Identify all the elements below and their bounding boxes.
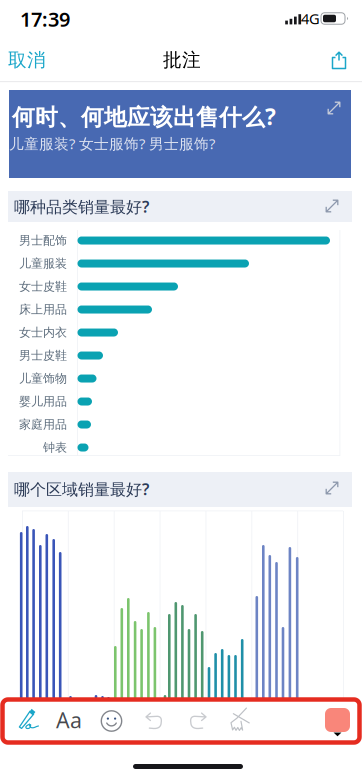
button[interactable]: 取消 [1,42,53,78]
staticText: 批注 [163,48,201,71]
button[interactable]: 表情 [99,709,123,733]
staticText: 4G [301,9,320,28]
button[interactable]: 画笔 [16,703,42,735]
staticText: 儿童饰物 [19,371,67,386]
button[interactable]: 展开 [318,192,346,220]
button[interactable]: 展开 [320,94,348,122]
staticText: 哪种品类销量最好? [14,196,149,217]
staticText: 床上用品 [19,302,67,317]
staticText: 17:39 [20,6,70,32]
staticText: 女士内衣 [19,325,67,340]
button[interactable]: 文本 [52,703,86,737]
staticText: 儿童服装 [19,256,67,271]
staticText: 儿童服装? 女士服饰? 男士服饰? [9,134,215,153]
staticText: 男士配饰 [19,233,67,248]
button[interactable]: 撤销 [143,711,165,729]
button[interactable]: Share [319,42,359,78]
staticText: 男士皮鞋 [19,348,67,363]
button[interactable]: 展开 [318,474,346,502]
staticText: 何时、何地应该出售什么? [12,101,276,131]
button[interactable]: 颜色 [324,703,351,736]
staticText: 取消 [8,48,46,71]
staticText: Aa [56,706,82,734]
staticText: 家庭用品 [19,417,67,432]
staticText: 女士皮鞋 [19,279,67,294]
staticText: 婴儿用品 [19,394,67,409]
button[interactable]: 重做 [187,711,209,729]
staticText: 钟表 [43,440,67,455]
staticText: 哪个区域销量最好? [14,478,149,500]
button[interactable]: 清除 [224,703,256,735]
